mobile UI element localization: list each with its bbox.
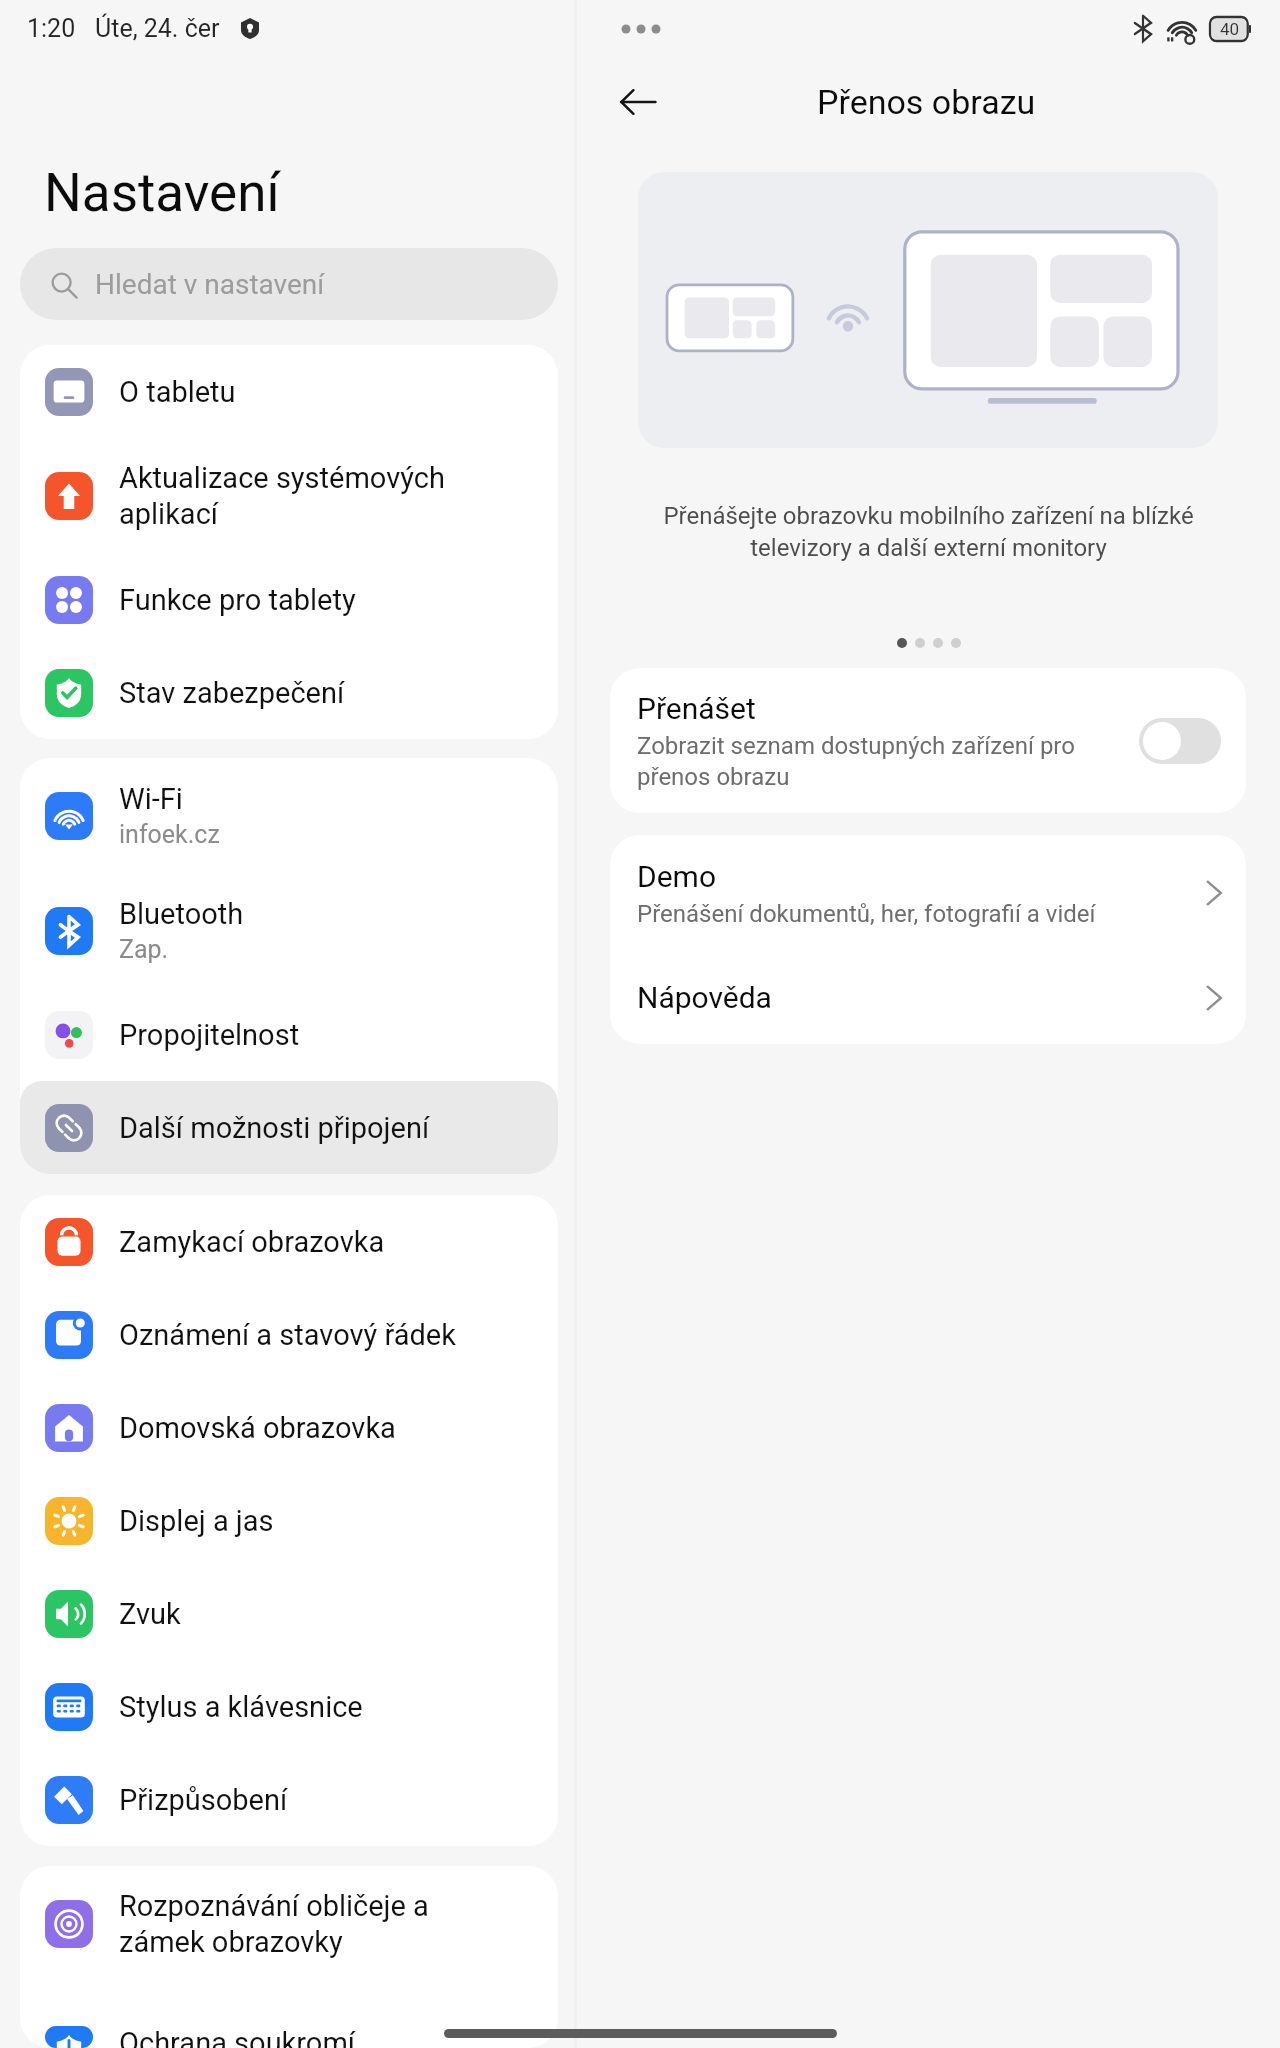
staticText: Přenášejte obrazovku mobilního zařízení … xyxy=(577,502,1280,561)
button[interactable]: Funkce pro tablety xyxy=(20,553,558,646)
button[interactable]: Bluetooth xyxy=(20,873,558,988)
staticText: Wi-Fi xyxy=(119,782,183,816)
staticText: Aktualizace systémových aplikací xyxy=(119,461,445,531)
staticText: infoek.cz xyxy=(119,820,220,849)
button[interactable]: Další možnosti připojení xyxy=(20,1081,558,1174)
staticText: Rozpoznávání obličeje a zámek obrazovky xyxy=(119,1889,429,1959)
button[interactable]: Nápověda xyxy=(610,951,1246,1044)
button[interactable]: Stav zabezpečení xyxy=(20,646,558,739)
staticText: 1:20 xyxy=(27,14,76,43)
staticText: Funkce pro tablety xyxy=(119,583,356,617)
staticText: Demo xyxy=(637,859,717,894)
button[interactable]: Hledat v nastavení xyxy=(20,248,558,320)
button[interactable]: Propojitelnost xyxy=(20,988,558,1081)
staticText: Stylus a klávesnice xyxy=(119,1690,363,1724)
staticText: Zvuk xyxy=(119,1597,181,1631)
staticText: Nastavení xyxy=(44,162,280,224)
button[interactable]: Aktualizace systémových aplikací xyxy=(20,438,558,553)
button[interactable]: Domovská obrazovka xyxy=(20,1381,558,1474)
staticText: Zamykací obrazovka xyxy=(119,1225,385,1259)
staticText: O tabletu xyxy=(119,375,236,409)
staticText: Přenos obrazu xyxy=(817,82,1036,122)
button[interactable]: Rozpoznávání obličeje a zámek obrazovky xyxy=(20,1866,558,1981)
staticText: Zap. xyxy=(119,935,169,964)
staticText: Bluetooth xyxy=(119,897,244,931)
staticText: Stav zabezpečení xyxy=(119,676,345,710)
button[interactable]: Přizpůsobení xyxy=(20,1753,558,1846)
button[interactable]: O tabletu xyxy=(20,345,558,438)
staticText: Nápověda xyxy=(637,980,1199,1015)
button[interactable]: Přenášet xyxy=(1139,718,1221,764)
staticText: 40 xyxy=(1220,19,1240,39)
staticText: Přenášení dokumentů, her, fotografií a v… xyxy=(637,900,1096,928)
button[interactable]: Zvuk xyxy=(20,1567,558,1660)
button[interactable]: Displej a jas xyxy=(20,1474,558,1567)
button[interactable]: Stylus a klávesnice xyxy=(20,1660,558,1753)
button[interactable]: Oznámení a stavový řádek xyxy=(20,1288,558,1381)
button[interactable]: Demo xyxy=(610,835,1246,951)
staticText: Displej a jas xyxy=(119,1504,274,1538)
staticText: Úte, 24. čer xyxy=(95,14,220,43)
button[interactable]: Zamykací obrazovka xyxy=(20,1195,558,1288)
staticText: Propojitelnost xyxy=(119,1018,300,1052)
button[interactable]: Back xyxy=(609,73,667,131)
button[interactable]: Ochrana soukromí xyxy=(20,2026,558,2048)
staticText: Přenášet xyxy=(637,691,756,726)
staticText: Ochrana soukromí xyxy=(119,2026,356,2048)
staticText: Hledat v nastavení xyxy=(95,268,325,301)
button[interactable]: Přenášet xyxy=(610,668,1246,813)
button[interactable]: Wi-Fi xyxy=(20,758,558,873)
staticText: Domovská obrazovka xyxy=(119,1411,396,1445)
staticText: Přizpůsobení xyxy=(119,1783,288,1817)
staticText: Další možnosti připojení xyxy=(119,1111,430,1145)
staticText: Oznámení a stavový řádek xyxy=(119,1318,456,1352)
staticText: Zobrazit seznam dostupných zařízení pro … xyxy=(637,732,1075,791)
